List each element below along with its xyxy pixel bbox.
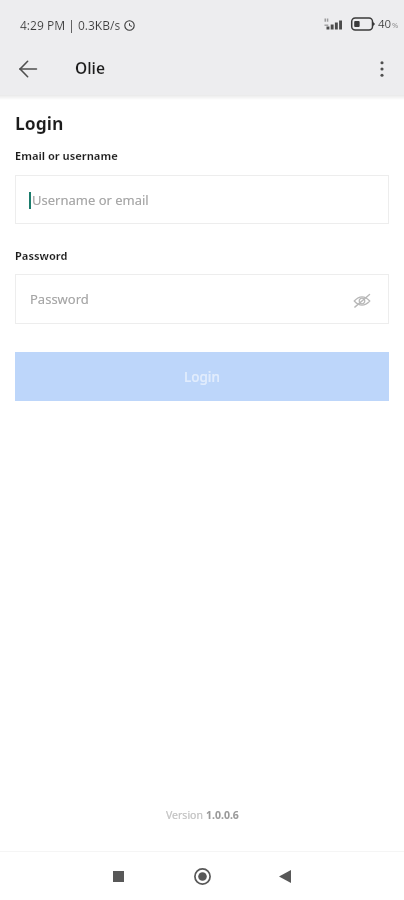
staticText: % <box>392 20 399 30</box>
button[interactable]: Back <box>9 50 47 88</box>
staticText: Login <box>184 368 220 386</box>
staticText: 4:29 PM | 0.3KB/s <box>20 17 121 33</box>
button[interactable]: Username or email <box>16 176 388 223</box>
button[interactable]: Show password <box>347 286 377 316</box>
button[interactable]: Recents <box>90 852 146 900</box>
button[interactable]: Password <box>16 275 388 323</box>
staticText: Password <box>30 290 89 308</box>
staticText: Password <box>15 248 68 263</box>
button[interactable]: More options <box>362 52 400 90</box>
staticText: Email or username <box>15 148 118 163</box>
button[interactable]: Back <box>257 852 313 900</box>
button[interactable]: Home <box>174 852 230 900</box>
staticText: 40 <box>378 16 392 32</box>
staticText: Username or email <box>32 191 149 209</box>
staticText: Version <box>166 808 206 822</box>
staticText: Olie <box>75 57 106 78</box>
button[interactable]: Login <box>15 352 389 401</box>
staticText: Login <box>15 111 64 135</box>
staticText: 1.0.0.6 <box>206 808 239 822</box>
